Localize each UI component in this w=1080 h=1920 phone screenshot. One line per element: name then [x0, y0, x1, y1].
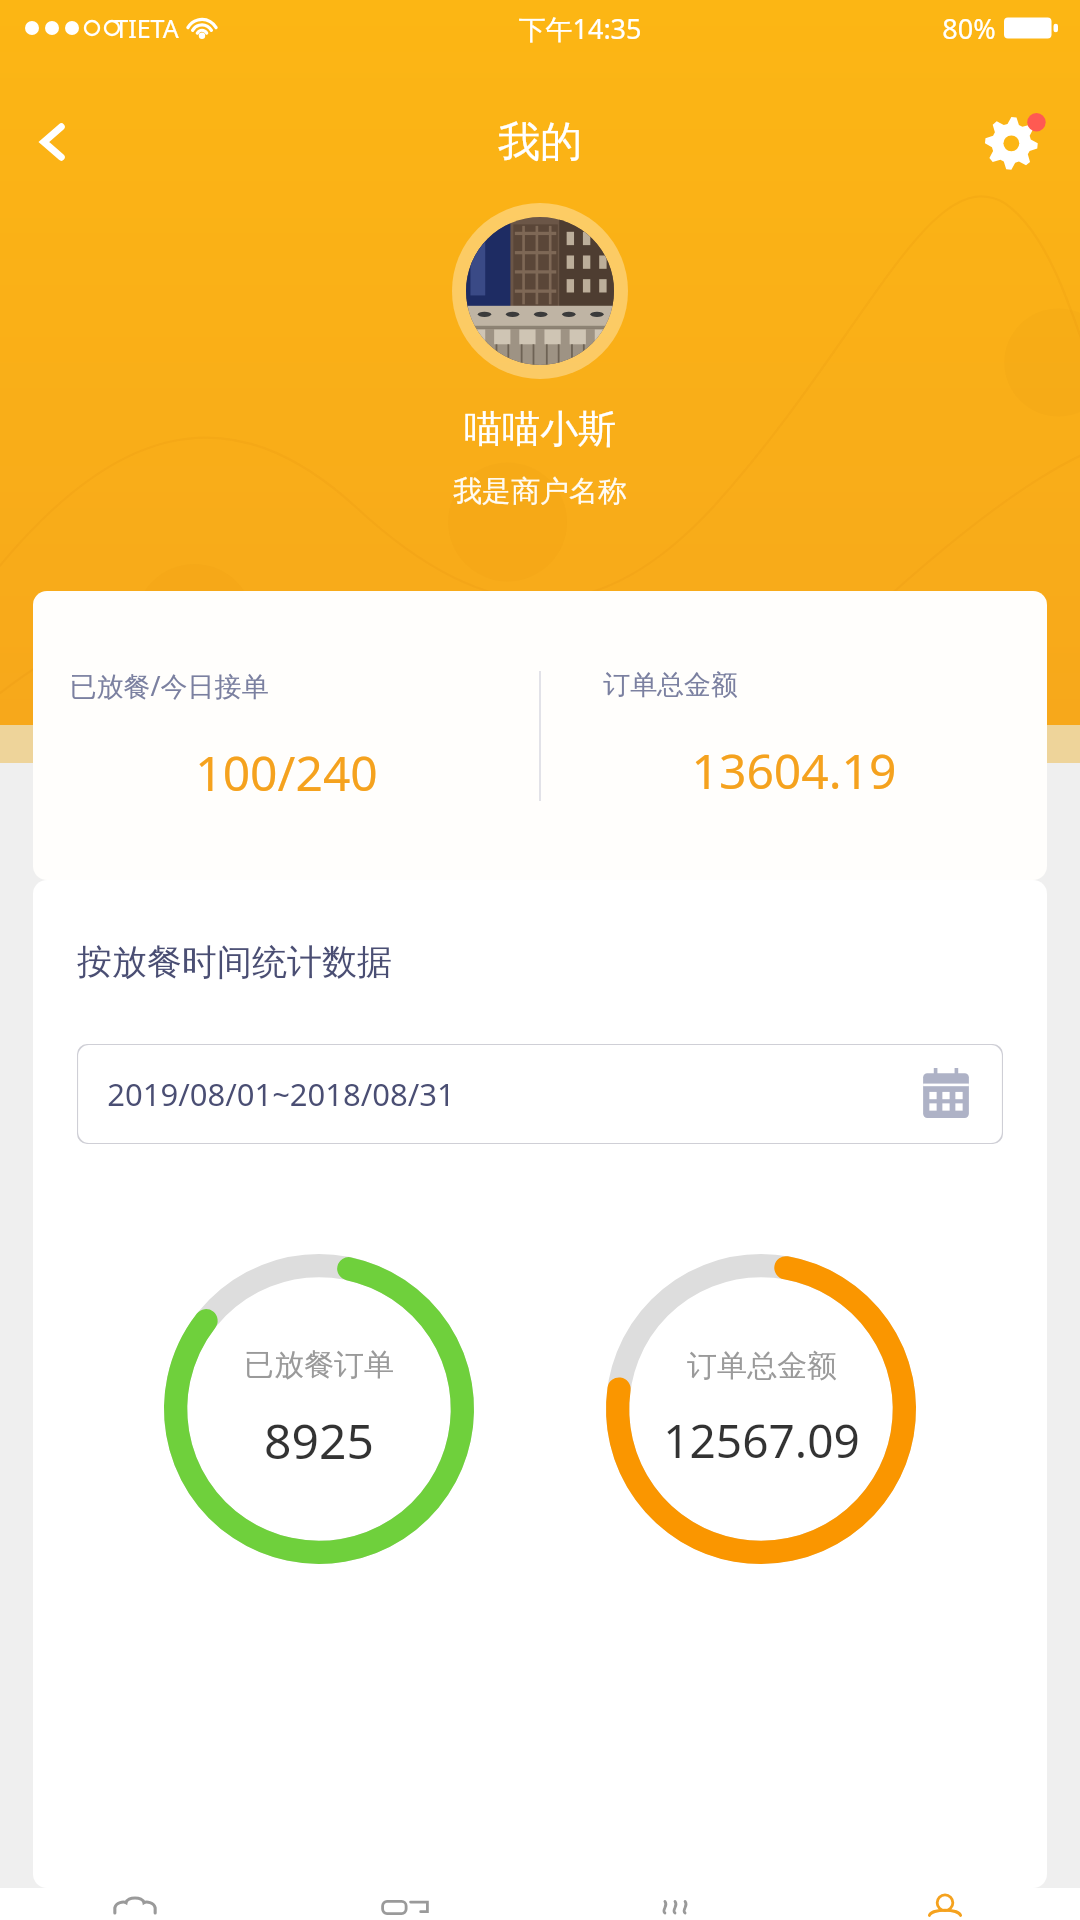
button[interactable]: 已放餐/今日接单 — [33, 591, 1047, 880]
button[interactable]: Back — [14, 103, 92, 181]
staticText: 按放餐时间统计数据 — [77, 940, 392, 984]
staticText: 2019/08/01~2018/08/31 — [107, 1073, 455, 1115]
staticText: 我的 — [498, 116, 582, 169]
staticText: 已放餐订单 — [244, 1346, 394, 1384]
staticText: 13604.19 — [691, 738, 897, 803]
button[interactable]: Orders — [0, 1888, 270, 1920]
staticText: 80% — [942, 10, 996, 47]
button[interactable]: 2019/08/01~2018/08/31 — [77, 1044, 1003, 1144]
staticText: 我是商户名称 — [453, 473, 627, 510]
staticText: 订单总金额 — [603, 668, 738, 702]
staticText: 12567.09 — [663, 1409, 860, 1472]
staticText: 100/240 — [195, 740, 378, 805]
staticText: 已放餐/今日接单 — [69, 667, 269, 704]
button[interactable]: Settings — [974, 102, 1054, 182]
button[interactable]: Messages — [270, 1888, 540, 1920]
button[interactable]: Profile photo — [452, 203, 628, 379]
button[interactable]: Profile — [810, 1888, 1080, 1920]
staticText: 下午14:35 — [518, 10, 642, 47]
staticText: 订单总金额 — [687, 1347, 837, 1385]
button[interactable]: Dishes — [540, 1888, 810, 1920]
staticText: TIETA — [114, 11, 179, 45]
staticText: 喵喵小斯 — [464, 405, 616, 453]
staticText: 8925 — [264, 1408, 374, 1473]
